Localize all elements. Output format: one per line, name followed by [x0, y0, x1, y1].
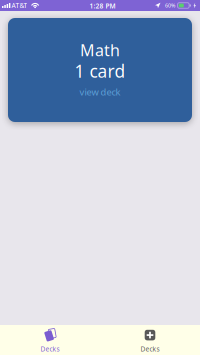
staticText: AT&T: [11, 1, 27, 10]
staticText: 60%: [165, 2, 175, 9]
button[interactable]: Decks: [0, 324, 100, 355]
button[interactable]: Decks: [100, 324, 200, 355]
staticText: 1 card: [74, 59, 125, 82]
staticText: Decks: [40, 345, 59, 353]
staticText: Decks: [140, 345, 159, 353]
staticText: view deck: [79, 86, 120, 98]
button[interactable]: Math: [8, 18, 192, 122]
staticText: Math: [80, 39, 120, 61]
staticText: 1:28 PM: [89, 2, 115, 10]
